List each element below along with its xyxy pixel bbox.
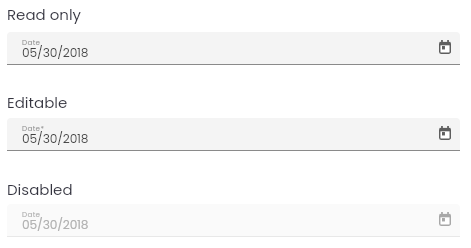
button[interactable]: Date* (7, 118, 460, 150)
staticText: 05/30/2018 (22, 44, 89, 61)
staticText: Date (22, 209, 41, 219)
button[interactable]: Date (7, 32, 460, 64)
other: Open calendar (439, 212, 451, 226)
other: Open calendar (439, 40, 451, 54)
staticText: Date (22, 37, 41, 47)
staticText: 05/30/2018 (22, 216, 89, 233)
staticText: Disabled (7, 179, 73, 200)
staticText: 05/30/2018 (22, 130, 89, 147)
button[interactable]: Date (7, 204, 460, 236)
other: Open calendar (439, 126, 451, 140)
staticText: Date* (22, 123, 45, 133)
staticText: Editable (7, 92, 68, 113)
staticText: Read only (7, 4, 82, 25)
